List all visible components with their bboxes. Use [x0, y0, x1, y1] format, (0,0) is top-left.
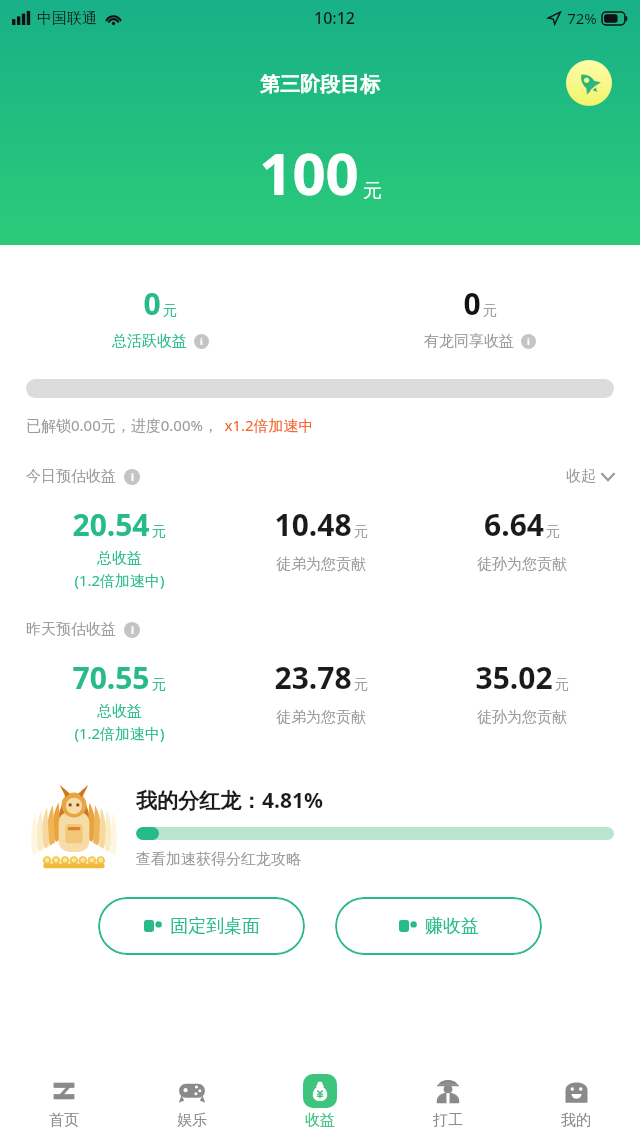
button[interactable]: 固定到桌面 [98, 897, 305, 955]
staticText: 我的分红龙：4.81% [136, 786, 323, 815]
staticText: 昨天预估收益 [26, 620, 116, 639]
staticText: 固定到桌面 [170, 915, 260, 938]
staticText: 20.54 [72, 504, 150, 545]
staticText: 总活跃收益 [112, 332, 187, 351]
button[interactable]: 35.02 [421, 657, 622, 727]
staticText: 元 [152, 676, 166, 694]
staticText: 元 [555, 676, 569, 694]
button[interactable]: 娱乐 [128, 1065, 256, 1138]
staticText: 首页 [49, 1111, 79, 1130]
staticText: 元 [163, 302, 177, 320]
staticText: 打工 [433, 1111, 463, 1130]
staticText: 总收益 [97, 549, 142, 568]
staticText: i [200, 335, 203, 348]
button[interactable]: 10.48 [220, 504, 421, 574]
staticText: 0 [463, 283, 481, 324]
staticText: 第三阶段目标 [260, 72, 380, 97]
staticText: 已解锁0.00元，进度0.00%， [26, 415, 218, 435]
staticText: i [527, 335, 530, 348]
button[interactable]: 首页 [0, 1065, 128, 1138]
staticText: (1.2倍加速中) [74, 723, 165, 743]
button[interactable]: 23.78 [220, 657, 421, 727]
staticText: 今日预估收益 [26, 467, 116, 486]
staticText: 我的 [561, 1111, 591, 1130]
staticText: (1.2倍加速中) [74, 570, 165, 590]
button[interactable]: 打工 [384, 1065, 512, 1138]
staticText: 元 [483, 302, 497, 320]
button[interactable]: 赚收益 [335, 897, 542, 955]
button[interactable]: Boost [566, 60, 612, 106]
staticText: 娱乐 [177, 1111, 207, 1130]
staticText: 赚收益 [425, 915, 479, 938]
staticText: 徒弟为您贡献 [276, 708, 366, 727]
button[interactable]: 0 [320, 283, 640, 351]
staticText: 中国联通 [37, 9, 97, 28]
staticText: 70.55 [72, 657, 150, 698]
button[interactable]: 6.64 [421, 504, 622, 574]
staticText: 总收益 [97, 702, 142, 721]
button[interactable]: 收起 [566, 467, 614, 486]
staticText: 100 [259, 133, 359, 212]
staticText: 元 [546, 523, 560, 541]
staticText: 元 [363, 179, 382, 203]
staticText: 元 [152, 523, 166, 541]
staticText: 查看加速获得分红龙攻略 [136, 850, 301, 869]
staticText: 徒弟为您贡献 [276, 555, 366, 574]
staticText: 0 [143, 283, 161, 324]
staticText: 10:12 [314, 7, 355, 29]
staticText: 元 [354, 676, 368, 694]
button[interactable]: 0 [0, 283, 320, 351]
staticText: 23.78 [274, 657, 352, 698]
staticText: i [131, 623, 134, 637]
staticText: 72% [567, 8, 597, 28]
button[interactable]: 70.55 [18, 657, 220, 743]
staticText: 元 [354, 523, 368, 541]
button[interactable]: 我的分红龙：4.81% [26, 779, 614, 875]
staticText: 徒孙为您贡献 [477, 708, 567, 727]
button[interactable]: 我的 [512, 1065, 640, 1138]
button[interactable]: 20.54 [18, 504, 220, 590]
button[interactable]: 收益 [256, 1065, 384, 1138]
staticText: 10.48 [274, 504, 352, 545]
staticText: 收益 [305, 1111, 335, 1130]
staticText: 35.02 [475, 657, 553, 698]
staticText: 徒孙为您贡献 [477, 555, 567, 574]
staticText: 有龙同享收益 [424, 332, 514, 351]
staticText: x1.2倍加速中 [224, 415, 314, 435]
staticText: 收起 [566, 467, 596, 486]
staticText: 6.64 [484, 504, 544, 545]
staticText: i [131, 470, 134, 484]
